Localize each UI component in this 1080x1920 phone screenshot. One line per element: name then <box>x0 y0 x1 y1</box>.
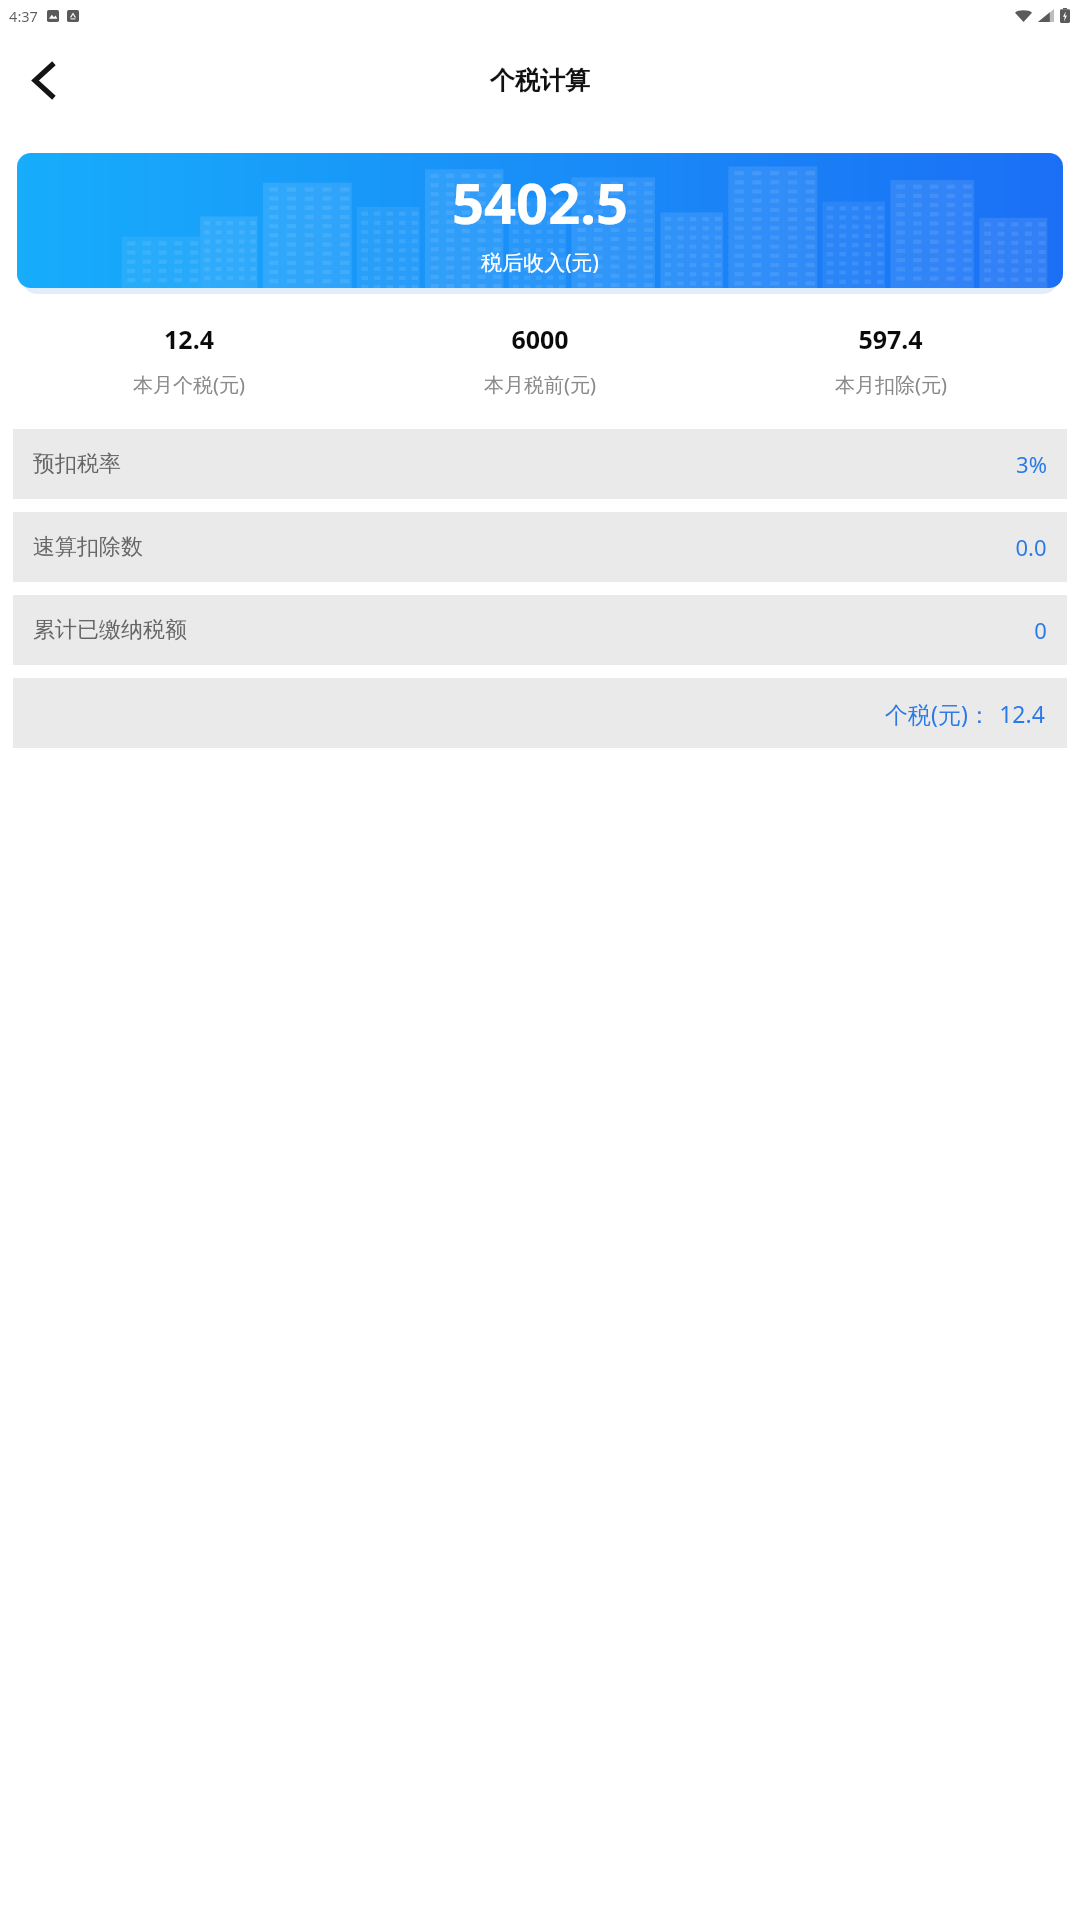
button[interactable]: 累计已缴纳税额 <box>13 595 1067 665</box>
staticText: 597.4 <box>858 322 923 356</box>
staticText: 5402.5 <box>452 164 628 240</box>
staticText: 12.4 <box>164 322 214 356</box>
button[interactable]: 预扣税率 <box>13 429 1067 499</box>
staticText: 0 <box>1034 615 1047 645</box>
staticText: 6000 <box>511 322 569 356</box>
staticText: 本月个税(元) <box>133 371 245 398</box>
button[interactable]: 个税(元)： <box>13 678 1067 748</box>
staticText: 税后收入(元) <box>481 248 599 277</box>
button[interactable]: 6000 <box>364 322 715 398</box>
staticText: 0.0 <box>1015 532 1047 562</box>
staticText: 累计已缴纳税额 <box>33 616 187 644</box>
button[interactable]: 速算扣除数 <box>13 512 1067 582</box>
staticText: 12.4 <box>999 698 1045 729</box>
staticText: 个税计算 <box>490 65 590 96</box>
button[interactable]: 5402.5 <box>17 153 1063 288</box>
staticText: 速算扣除数 <box>33 533 143 561</box>
button[interactable]: 597.4 <box>715 322 1066 398</box>
staticText: 3% <box>1016 449 1047 479</box>
staticText: 预扣税率 <box>33 450 121 478</box>
staticText: 本月税前(元) <box>484 371 596 398</box>
staticText: 个税(元)： <box>885 698 991 729</box>
staticText: 4:37 <box>9 6 38 26</box>
button[interactable]: 12.4 <box>14 322 364 398</box>
button[interactable]: Back <box>14 51 72 109</box>
staticText: 本月扣除(元) <box>835 371 947 398</box>
